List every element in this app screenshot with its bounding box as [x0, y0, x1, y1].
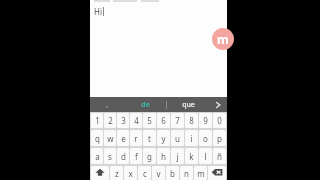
button[interactable]: 1 — [91, 113, 103, 128]
button[interactable]: t — [143, 130, 156, 146]
button[interactable]: v — [152, 166, 165, 180]
staticText: u — [175, 133, 180, 144]
button[interactable]: h — [157, 148, 170, 164]
staticText: b — [170, 168, 175, 179]
button[interactable]: c — [138, 166, 151, 180]
button[interactable]: 9 — [199, 113, 212, 128]
button[interactable]: z — [110, 166, 123, 180]
staticText: 6 — [161, 115, 166, 126]
button[interactable]: w — [104, 130, 116, 146]
staticText: m — [197, 168, 205, 179]
button[interactable]: 8 — [185, 113, 198, 128]
button[interactable]: u — [171, 130, 184, 146]
staticText: 2 — [108, 115, 113, 126]
staticText: 1 — [95, 115, 100, 126]
button[interactable]: 2 — [104, 113, 116, 128]
staticText: y — [161, 133, 166, 144]
staticText: p — [217, 133, 222, 144]
staticText: 7 — [175, 115, 180, 126]
button[interactable]: q — [91, 130, 103, 146]
staticText: de — [141, 100, 150, 110]
button[interactable]: d — [117, 148, 129, 164]
button[interactable]: x — [124, 166, 137, 180]
button[interactable]: p — [213, 130, 226, 146]
button[interactable]: 6 — [157, 113, 170, 128]
staticText: j — [176, 151, 179, 162]
button[interactable]: de — [124, 97, 166, 112]
button[interactable]: f — [130, 148, 142, 164]
staticText: q — [95, 133, 100, 144]
button[interactable]: y — [157, 130, 170, 146]
button[interactable]: , — [90, 97, 124, 112]
button[interactable]: 7 — [171, 113, 184, 128]
staticText: 4 — [134, 115, 139, 126]
staticText: e — [121, 133, 126, 144]
staticText: r — [134, 133, 138, 144]
staticText: que — [182, 100, 195, 110]
button[interactable]: 3 — [117, 113, 129, 128]
staticText: f — [135, 151, 138, 162]
button[interactable]: que — [167, 97, 209, 112]
staticText: i — [190, 133, 193, 144]
staticText: l — [204, 151, 207, 162]
button[interactable]: k — [185, 148, 198, 164]
button[interactable]: ñ — [213, 148, 226, 164]
staticText: 5 — [147, 115, 152, 126]
button[interactable]: i — [185, 130, 198, 146]
staticText: v — [156, 168, 161, 179]
staticText: n — [184, 168, 189, 179]
button[interactable]: j — [171, 148, 184, 164]
staticText: 9 — [203, 115, 208, 126]
staticText: , — [106, 100, 108, 110]
staticText: s — [108, 151, 112, 162]
button[interactable]: r — [130, 130, 142, 146]
staticText: Hi — [94, 6, 102, 17]
staticText: g — [147, 151, 152, 162]
staticText: 3 — [121, 115, 126, 126]
staticText: 0 — [217, 115, 222, 126]
button[interactable]: a — [91, 148, 103, 164]
button[interactable]: 5 — [143, 113, 156, 128]
button[interactable]: m — [194, 166, 207, 180]
button[interactable]: g — [143, 148, 156, 164]
button[interactable]: More suggestions — [209, 97, 227, 112]
button[interactable]: Shift — [91, 166, 109, 180]
staticText: ñ — [217, 151, 222, 162]
staticText: c — [143, 168, 147, 179]
staticText: m — [217, 31, 229, 47]
button[interactable]: l — [199, 148, 212, 164]
button[interactable]: e — [117, 130, 129, 146]
staticText: t — [148, 133, 151, 144]
staticText: k — [189, 151, 194, 162]
staticText: o — [203, 133, 208, 144]
staticText: a — [95, 151, 100, 162]
button[interactable]: 4 — [130, 113, 142, 128]
button[interactable]: Profile — [212, 28, 234, 50]
staticText: z — [115, 168, 119, 179]
staticText: x — [128, 168, 133, 179]
button[interactable]: o — [199, 130, 212, 146]
staticText: w — [107, 133, 114, 144]
button[interactable]: n — [180, 166, 193, 180]
staticText: d — [121, 151, 126, 162]
button[interactable]: b — [166, 166, 179, 180]
staticText: h — [161, 151, 166, 162]
button[interactable]: s — [104, 148, 116, 164]
staticText: 8 — [189, 115, 194, 126]
button[interactable]: 0 — [213, 113, 226, 128]
button[interactable]: Hi — [94, 6, 104, 17]
button[interactable]: Backspace — [208, 166, 226, 180]
